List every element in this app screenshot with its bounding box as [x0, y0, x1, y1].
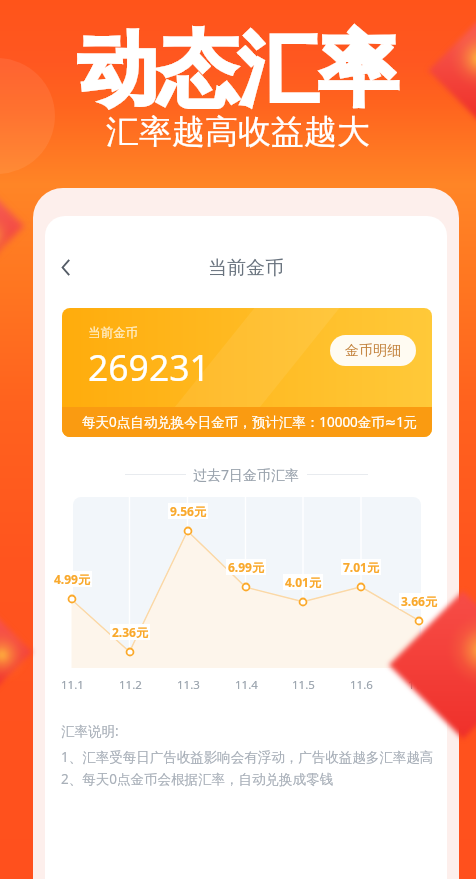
staticText: 3.66元: [401, 593, 437, 609]
staticText: 4.99元: [54, 571, 90, 587]
staticText: 当前金币: [88, 325, 138, 341]
staticText: 汇率说明:: [61, 722, 119, 740]
staticText: 11.2: [119, 677, 142, 693]
staticText: 11.1: [61, 677, 84, 693]
staticText: 4.01元: [285, 574, 321, 590]
staticText: 每天0点自动兑换今日金币，预计汇率：10000金币≈1元: [82, 413, 418, 431]
staticText: 11.3: [177, 677, 200, 693]
staticText: 当前金币: [45, 256, 447, 280]
staticText: 11.6: [350, 677, 373, 693]
staticText: 11.4: [235, 677, 258, 693]
staticText: 9.56元: [170, 503, 206, 519]
staticText: 1、汇率受每日广告收益影响会有浮动，广告收益越多汇率越高: [61, 748, 434, 766]
button[interactable]: Back: [48, 249, 84, 285]
staticText: 2、每天0点金币会根据汇率，自动兑换成零钱: [61, 770, 333, 788]
staticText: 11.7: [408, 677, 431, 693]
staticText: 过去7日金币汇率: [193, 465, 300, 484]
staticText: 7.01元: [343, 559, 379, 575]
staticText: 金币明细: [345, 342, 401, 360]
staticText: 2.36元: [112, 624, 148, 640]
button[interactable]: 金币明细: [330, 335, 416, 366]
staticText: 动态汇率: [0, 20, 476, 121]
staticText: 11.5: [292, 677, 315, 693]
staticText: 汇率越高收益越大: [0, 111, 476, 153]
staticText: 269231: [88, 343, 210, 391]
staticText: 6.99元: [228, 559, 264, 575]
